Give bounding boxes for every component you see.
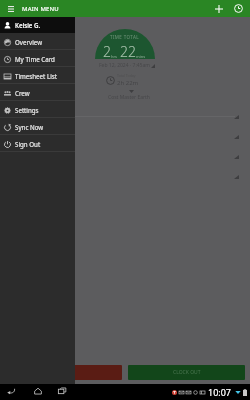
button[interactable]: Add — [210, 0, 227, 17]
button[interactable]: My Time Card — [0, 50, 75, 67]
staticText: 10:07 — [208, 386, 232, 398]
staticText: 2 — [103, 42, 111, 61]
staticText: Timesheet List — [15, 72, 57, 80]
staticText: Sync Now — [15, 123, 44, 131]
staticText: MAIN MENU — [22, 5, 59, 13]
button[interactable]: Sync Now — [0, 118, 75, 135]
button[interactable]: Home — [31, 384, 45, 398]
button[interactable]: Back — [4, 384, 18, 398]
staticText: Crew — [15, 89, 30, 97]
button[interactable]: CLOCK OUT — [128, 365, 245, 380]
button[interactable]: Sign Out — [0, 135, 75, 152]
staticText: My Time Card — [15, 55, 55, 63]
button[interactable]: Timesheet List — [0, 67, 75, 84]
staticText: mins — [136, 54, 146, 59]
button[interactable]: Recent apps — [55, 384, 69, 398]
staticText: hrs — [111, 54, 118, 59]
staticText: Sign Out — [15, 140, 41, 148]
button[interactable]: Clock in — [230, 0, 247, 17]
staticText: Kelsie G. — [15, 21, 41, 29]
button[interactable]: Overview — [0, 33, 75, 50]
button[interactable]: Crew — [0, 84, 75, 101]
button[interactable]: Kelsie G. — [0, 17, 75, 33]
staticText: CLOCK OUT — [173, 369, 201, 376]
staticText: TIME TOTAL — [110, 34, 139, 40]
button[interactable]: Open navigation menu — [3, 1, 18, 16]
staticText: Settings — [15, 106, 39, 114]
button[interactable]: Settings — [0, 101, 75, 118]
staticText: Overview — [15, 38, 42, 46]
staticText: 2h 22m — [117, 79, 139, 87]
staticText: Feb 12, 2024 · 7:45am — [99, 62, 150, 69]
button[interactable]: BREAK — [8, 365, 122, 380]
staticText: 22 — [120, 42, 136, 61]
staticText: Cost Master Earth — [108, 94, 150, 101]
